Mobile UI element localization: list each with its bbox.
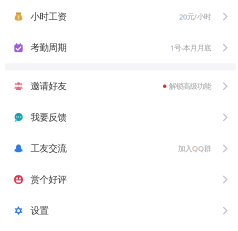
staticText: 工友交流 (30, 143, 66, 154)
staticText: 我要反馈 (30, 111, 66, 123)
staticText: 设置 (30, 205, 48, 217)
button[interactable]: 设置 (0, 195, 238, 226)
button[interactable]: 工友交流 (0, 133, 238, 164)
staticText: 邀请好友 (30, 80, 66, 92)
button[interactable]: 我要反馈 (0, 102, 238, 133)
staticText: 赏个好评 (30, 174, 66, 185)
staticText: 考勤周期 (30, 42, 66, 54)
staticText: 20元/小时 (179, 11, 211, 22)
button[interactable]: 赏个好评 (0, 164, 238, 195)
staticText: 加入QQ群 (178, 143, 211, 154)
staticText: 解锁高级功能 (169, 81, 211, 91)
button[interactable]: 小时工资 (0, 1, 238, 32)
staticText: 1号-本月月底 (170, 43, 211, 53)
staticText: 小时工资 (30, 11, 66, 22)
button[interactable]: 考勤周期 (0, 32, 238, 63)
button[interactable]: 邀请好友 (0, 71, 238, 102)
